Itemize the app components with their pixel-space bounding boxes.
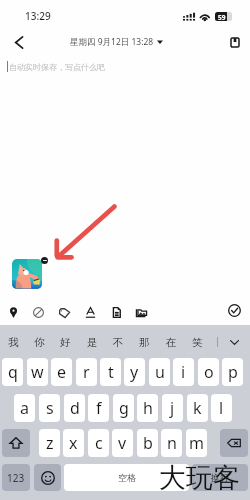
- staticText: b: [143, 432, 153, 454]
- staticText: 换行: [211, 472, 229, 483]
- staticText: t: [108, 361, 114, 383]
- button[interactable]: f: [88, 394, 109, 422]
- staticText: s: [46, 397, 54, 419]
- button[interactable]: k: [187, 394, 208, 422]
- button[interactable]: s: [39, 394, 60, 422]
- staticText: v: [118, 432, 127, 454]
- staticText: 空格: [118, 472, 136, 483]
- button[interactable]: Location: [1, 300, 25, 324]
- staticText: 是: [87, 336, 98, 349]
- button[interactable]: o: [198, 358, 219, 386]
- staticText: a: [20, 397, 29, 419]
- button[interactable]: Document: [104, 300, 128, 324]
- staticText: n: [167, 432, 177, 454]
- staticText: 13:29: [25, 9, 51, 23]
- button[interactable]: Shift: [2, 429, 30, 457]
- button[interactable]: w: [27, 358, 48, 386]
- button[interactable]: p: [222, 358, 243, 386]
- staticText: 好: [60, 336, 71, 349]
- staticText: 不: [113, 336, 124, 349]
- staticText: 我: [8, 336, 19, 349]
- button[interactable]: u: [149, 358, 170, 386]
- staticText: i: [181, 361, 186, 383]
- staticText: q: [8, 361, 18, 383]
- button[interactable]: 是: [80, 331, 104, 353]
- button[interactable]: 换行: [192, 464, 248, 491]
- staticText: y: [130, 361, 139, 383]
- button[interactable]: 我: [1, 331, 25, 353]
- staticText: 自动实时保存，写点什么吧: [9, 62, 105, 72]
- button[interactable]: Done: [222, 298, 246, 322]
- staticText: 123: [7, 471, 25, 485]
- staticText: l: [219, 397, 224, 419]
- staticText: 在: [166, 336, 177, 349]
- button[interactable]: z: [39, 429, 60, 457]
- button[interactable]: v: [112, 429, 133, 457]
- staticText: f: [96, 397, 102, 419]
- staticText: 笑: [192, 336, 203, 349]
- staticText: 你: [34, 336, 45, 349]
- button[interactable]: t: [100, 358, 121, 386]
- button[interactable]: 空格: [64, 464, 189, 491]
- button[interactable]: j: [162, 394, 183, 422]
- button[interactable]: 不: [106, 331, 130, 353]
- staticText: j: [170, 397, 175, 419]
- staticText: h: [143, 397, 153, 419]
- staticText: d: [70, 397, 80, 419]
- button[interactable]: Text format: [78, 300, 102, 324]
- button[interactable]: Tag: [52, 300, 76, 324]
- staticText: c: [95, 432, 103, 454]
- button[interactable]: a: [14, 394, 35, 422]
- button[interactable]: Attached image: [12, 259, 42, 289]
- staticText: 那: [139, 336, 150, 349]
- staticText: w: [31, 361, 44, 383]
- button[interactable]: h: [137, 394, 158, 422]
- button[interactable]: i: [173, 358, 194, 386]
- button[interactable]: r: [76, 358, 97, 386]
- button[interactable]: n: [161, 429, 182, 457]
- button[interactable]: e: [51, 358, 72, 386]
- button[interactable]: 在: [159, 331, 183, 353]
- staticText: e: [57, 361, 67, 383]
- button[interactable]: 笑: [185, 331, 209, 353]
- staticText: u: [155, 361, 165, 383]
- button[interactable]: More candidates: [224, 331, 245, 353]
- button[interactable]: l: [211, 394, 232, 422]
- button[interactable]: Emoji: [34, 464, 61, 491]
- staticText: 大玩客: [159, 461, 240, 495]
- button[interactable]: q: [2, 358, 23, 386]
- button[interactable]: d: [64, 394, 85, 422]
- button[interactable]: 那: [132, 331, 156, 353]
- staticText: m: [189, 432, 204, 454]
- staticText: r: [83, 361, 90, 383]
- button[interactable]: Save: [224, 30, 245, 55]
- button[interactable]: Backspace: [220, 429, 248, 457]
- staticText: o: [204, 361, 214, 383]
- button[interactable]: 123: [2, 464, 30, 491]
- button[interactable]: 星期四 9月12日 13:28: [70, 36, 163, 48]
- button[interactable]: Forbid: [26, 300, 50, 324]
- staticText: z: [46, 432, 54, 454]
- button[interactable]: Gallery: [129, 300, 153, 324]
- button[interactable]: y: [124, 358, 145, 386]
- button[interactable]: g: [113, 394, 134, 422]
- button[interactable]: m: [186, 429, 207, 457]
- button[interactable]: 好: [53, 331, 77, 353]
- button[interactable]: Back: [6, 30, 31, 55]
- staticText: p: [228, 361, 238, 383]
- button[interactable]: 你: [27, 331, 51, 353]
- staticText: g: [119, 397, 129, 419]
- staticText: k: [193, 397, 202, 419]
- button[interactable]: b: [137, 429, 158, 457]
- staticText: 星期四 9月12日 13:28: [70, 36, 154, 48]
- staticText: x: [69, 432, 78, 454]
- staticText: 59: [218, 13, 226, 21]
- button[interactable]: Remove image: [41, 257, 48, 264]
- button[interactable]: c: [88, 429, 109, 457]
- button[interactable]: x: [63, 429, 84, 457]
